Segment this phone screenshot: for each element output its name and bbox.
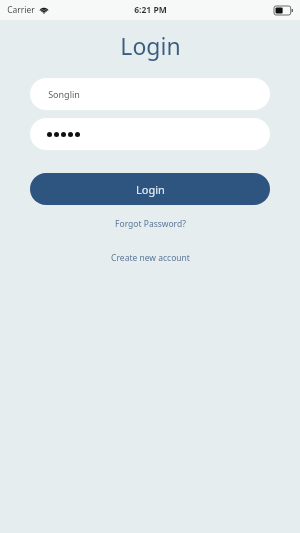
staticText: Login [136, 182, 165, 197]
button[interactable]: Login [30, 173, 270, 205]
staticText: Create new account [111, 252, 190, 264]
staticText: Forgot Password? [115, 218, 186, 230]
button[interactable] [30, 118, 270, 150]
staticText: Songlin [48, 88, 80, 100]
button[interactable]: Songlin [30, 78, 270, 110]
button[interactable]: Forgot Password? [107, 215, 194, 233]
staticText: 6:21 PM [134, 4, 167, 16]
button[interactable]: Create new account [103, 249, 198, 267]
staticText: Login [120, 30, 181, 61]
staticText: Carrier [7, 4, 35, 16]
